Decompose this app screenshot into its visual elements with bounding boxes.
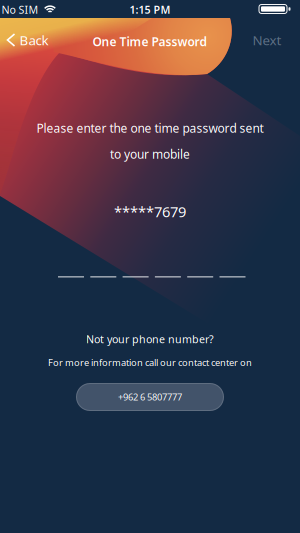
staticText: +962 6 5807777 (118, 391, 182, 403)
staticText: For more information call our contact ce… (48, 356, 252, 369)
staticText: Back (19, 31, 48, 49)
button[interactable]: Next (252, 31, 281, 49)
staticText: 1:15 PM (129, 2, 170, 17)
button[interactable]: +962 6 5807777 (76, 383, 224, 411)
staticText: No SIM (1, 2, 38, 17)
button[interactable]: Back (7, 31, 48, 49)
button[interactable]: Enter one time password (58, 266, 245, 288)
staticText: to your mobile (110, 146, 190, 162)
staticText: One Time Password (92, 33, 207, 49)
staticText: *****7679 (114, 202, 186, 221)
staticText: Next (252, 31, 281, 49)
staticText: Please enter the one time password sent (36, 120, 263, 136)
staticText: Not your phone number? (86, 332, 214, 346)
